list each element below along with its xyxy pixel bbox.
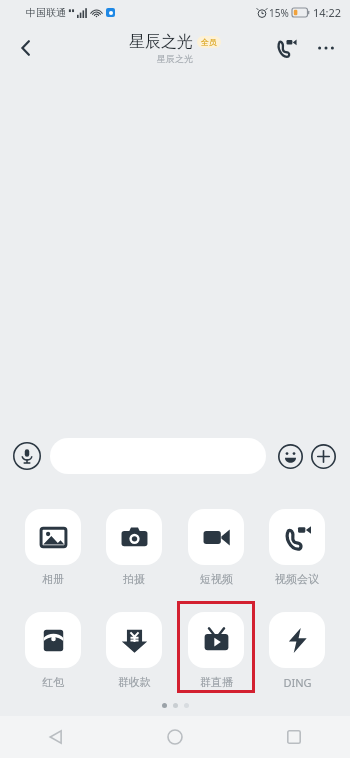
staticText: DING [283,675,312,690]
button[interactable]: Voice message [10,439,44,473]
staticText: 群收款 [118,675,151,689]
button[interactable]: Back [34,716,78,758]
button[interactable]: 视频会议 [258,498,336,590]
button[interactable]: Video call [266,28,306,68]
button[interactable]: Home [153,716,197,758]
staticText: 群直播 [200,675,233,689]
staticText: 全员 [201,37,217,47]
staticText: 短视频 [200,572,233,586]
button[interactable]: 群直播 [177,601,255,693]
button[interactable]: Emoji [274,440,306,472]
staticText: 15% [269,6,289,20]
button[interactable]: 短视频 [177,498,255,590]
button[interactable]: More options [306,28,346,68]
button[interactable]: 群收款 [95,601,173,693]
button[interactable]: Back [6,28,46,68]
staticText: 红包 [42,675,64,689]
staticText: 星辰之光 [129,32,193,52]
button[interactable]: Add [306,439,340,473]
button[interactable]: 红包 [14,601,92,693]
staticText: 中国联通 [26,6,66,19]
staticText: 视频会议 [275,572,319,586]
button[interactable]: 相册 [14,498,92,590]
button[interactable]: 拍摄 [95,498,173,590]
button[interactable]: DING [258,601,336,693]
staticText: 星辰之光 [157,53,193,64]
staticText: 14:22 [313,5,342,20]
button[interactable] [50,438,266,474]
button[interactable]: Recents [272,716,316,758]
staticText: 拍摄 [123,572,145,586]
staticText: 相册 [42,572,64,586]
